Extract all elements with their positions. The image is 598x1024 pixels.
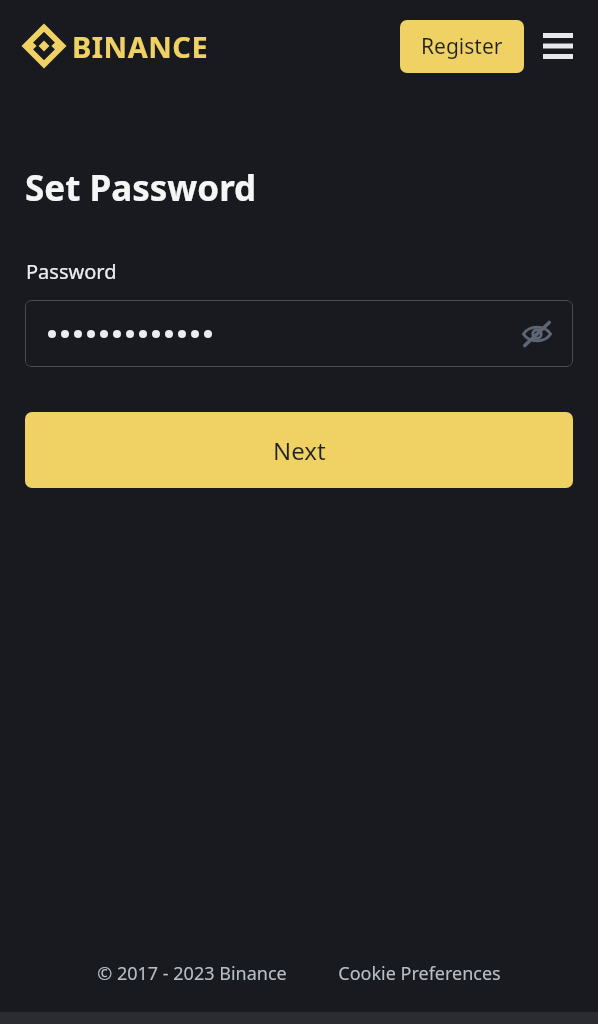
button[interactable]: BINANCE xyxy=(24,26,209,66)
staticText: Cookie Preferences xyxy=(338,961,501,986)
button[interactable]: Menu xyxy=(540,28,576,64)
staticText: © 2017 - 2023 Binance xyxy=(97,961,287,986)
button[interactable]: © 2017 - 2023 Binance xyxy=(97,961,287,986)
staticText: Password xyxy=(26,258,117,285)
button[interactable]: Show password xyxy=(517,314,557,354)
button[interactable]: Cookie Preferences xyxy=(338,961,501,986)
staticText: BINANCE xyxy=(72,27,209,66)
button[interactable]: Show password xyxy=(25,300,573,367)
button[interactable]: Register xyxy=(400,20,524,73)
staticText: Next xyxy=(273,434,326,467)
staticText: Set Password xyxy=(25,164,257,212)
button[interactable]: Next xyxy=(25,412,573,488)
staticText: Register xyxy=(421,32,503,61)
